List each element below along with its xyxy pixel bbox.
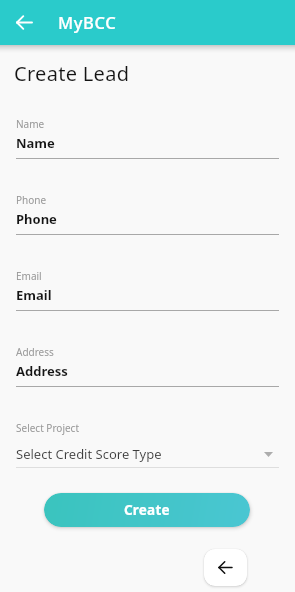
staticText: Address	[16, 362, 68, 380]
staticText: Name	[16, 134, 55, 152]
button[interactable]: Back	[204, 549, 247, 586]
staticText: Select Credit Score Type	[16, 445, 264, 463]
staticText: Select Project	[16, 421, 80, 435]
button[interactable]: Phone	[0, 193, 295, 237]
button[interactable]: Select Credit Score Type	[16, 441, 273, 467]
staticText: Email	[16, 269, 42, 283]
staticText: Email	[16, 286, 52, 304]
staticText: Name	[16, 117, 45, 131]
staticText: Address	[16, 345, 54, 359]
staticText: Phone	[16, 210, 57, 228]
button[interactable]: Email	[0, 269, 295, 313]
staticText: Create Lead	[14, 60, 130, 87]
button[interactable]: Name	[0, 117, 295, 161]
staticText: Create	[124, 501, 170, 519]
button[interactable]: Address	[0, 345, 295, 389]
staticText: MyBCC	[58, 11, 117, 33]
button[interactable]: Back	[8, 0, 40, 45]
staticText: Phone	[16, 193, 47, 207]
button[interactable]: Create	[44, 493, 250, 527]
